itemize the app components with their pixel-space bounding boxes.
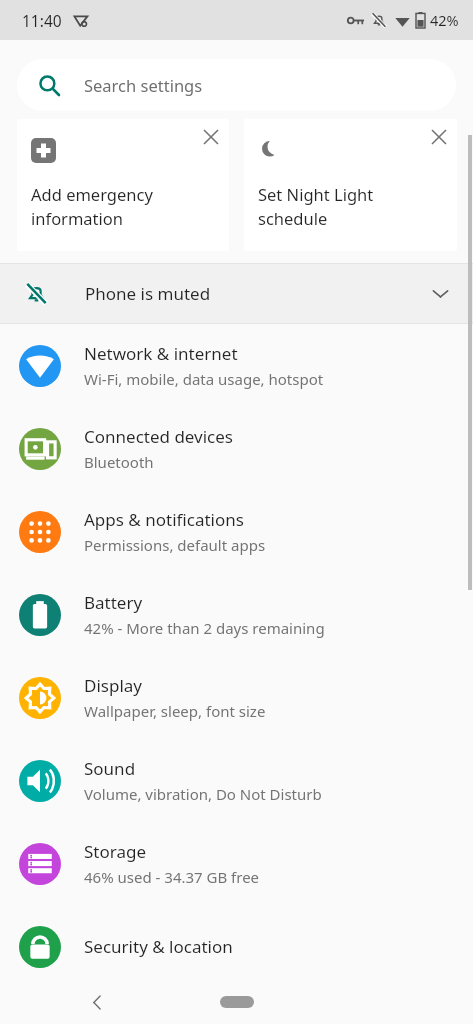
staticText: 42% (430, 10, 459, 30)
button[interactable]: Sound (0, 739, 473, 822)
button[interactable]: Dismiss (17, 119, 229, 251)
button[interactable]: Home (202, 985, 272, 1019)
staticText: Set Night Light (258, 183, 374, 205)
staticText: Battery (84, 591, 143, 614)
staticText: Connected devices (84, 425, 234, 448)
staticText: Search settings (84, 74, 203, 96)
staticText: Permissions, default apps (84, 535, 266, 555)
button[interactable]: Display (0, 656, 473, 739)
button[interactable]: Back (78, 983, 116, 1021)
button[interactable]: Phone is muted (0, 264, 473, 323)
button[interactable]: Connected devices (0, 407, 473, 490)
button[interactable]: Search settings (17, 59, 456, 111)
staticText: 42% - More than 2 days remaining (84, 618, 325, 638)
staticText: Phone is muted (85, 282, 211, 305)
button[interactable]: Storage (0, 822, 473, 905)
staticText: Volume, vibration, Do Not Disturb (84, 784, 322, 804)
staticText: Storage (84, 840, 147, 863)
staticText: 46% used - 34.37 GB free (84, 867, 260, 887)
staticText: Add emergency (31, 183, 153, 205)
staticText: 11:40 (22, 10, 62, 31)
staticText: Wallpaper, sleep, font size (84, 701, 266, 721)
button[interactable]: Apps & notifications (0, 490, 473, 573)
button[interactable]: Security & location (0, 905, 473, 988)
staticText: Sound (84, 757, 136, 780)
button[interactable]: Dismiss (193, 119, 229, 155)
staticText: Bluetooth (84, 452, 154, 472)
staticText: Display (84, 674, 142, 697)
staticText: Security & location (84, 935, 233, 958)
staticText: Apps & notifications (84, 508, 244, 531)
button[interactable]: Dismiss (244, 119, 457, 251)
button[interactable]: Battery (0, 573, 473, 656)
button[interactable]: Dismiss (421, 119, 457, 155)
button[interactable]: Network & internet (0, 324, 473, 407)
staticText: information (31, 207, 124, 229)
staticText: Network & internet (84, 342, 238, 365)
staticText: schedule (258, 207, 328, 229)
staticText: Wi-Fi, mobile, data usage, hotspot (84, 369, 324, 389)
